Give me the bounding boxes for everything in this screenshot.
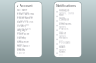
staticText: Off [59, 40, 63, 42]
staticText: English [17, 32, 24, 34]
staticText: Calendar [59, 18, 69, 21]
staticText: Banners [59, 26, 66, 29]
staticText: Alex Morgan [17, 12, 29, 14]
staticText: Date of birth [17, 20, 33, 24]
button[interactable]: Reminders [56, 23, 79, 28]
button[interactable]: Photos [56, 28, 79, 32]
staticText: Currency [17, 36, 26, 40]
button[interactable]: Music [56, 46, 79, 51]
staticText: GMT-8 [17, 36, 24, 38]
staticText: 3 active [17, 52, 25, 54]
staticText: ‹ [17, 4, 19, 8]
button[interactable]: ‹ [17, 4, 40, 8]
staticText: Badges [59, 17, 65, 19]
staticText: Health [59, 36, 67, 39]
button[interactable]: Podcasts [56, 42, 79, 46]
staticText: News [59, 50, 65, 53]
staticText: Music [59, 46, 65, 49]
staticText: Sounds [59, 44, 65, 47]
staticText: Phone number [17, 16, 33, 20]
staticText: Messages [59, 9, 69, 12]
staticText: Enabled [17, 48, 24, 50]
staticText: Wallet [59, 32, 66, 35]
button[interactable]: Messages [56, 9, 79, 14]
staticText: Notifications [56, 4, 76, 8]
button[interactable]: News [56, 51, 79, 55]
staticText: Country [17, 24, 26, 28]
staticText: Banners [59, 49, 66, 52]
staticText: +1 555 0134 [17, 20, 28, 22]
staticText: Devices [17, 48, 25, 52]
staticText: Language [17, 28, 27, 32]
staticText: Email address [17, 12, 34, 16]
staticText: Photos [59, 27, 68, 30]
staticText: Alerts [59, 21, 65, 24]
staticText: Mail [59, 13, 64, 16]
staticText: Time zone [17, 32, 29, 36]
button[interactable]: Wallet [56, 32, 79, 37]
staticText: Account [20, 4, 33, 8]
staticText: Off [59, 31, 63, 33]
button[interactable]: Calendar [56, 19, 79, 23]
staticText: alex@mail.com [17, 16, 33, 18]
staticText: Weekly [17, 44, 24, 46]
staticText: 12 Mar 1994 [17, 24, 29, 26]
staticText: Two-factor [17, 44, 30, 48]
button[interactable]: Mail [56, 14, 79, 19]
staticText: United States [17, 28, 31, 30]
staticText: Banners [59, 35, 66, 38]
button[interactable]: Health [56, 37, 79, 42]
staticText: Reminders [59, 23, 71, 26]
staticText: Banners, Sounds [59, 12, 74, 15]
staticText: Full name [17, 8, 27, 12]
staticText: USD [17, 40, 22, 42]
button[interactable]: Notifications [56, 4, 79, 8]
staticText: Newsletter [17, 40, 29, 44]
staticText: Podcasts [59, 41, 70, 44]
